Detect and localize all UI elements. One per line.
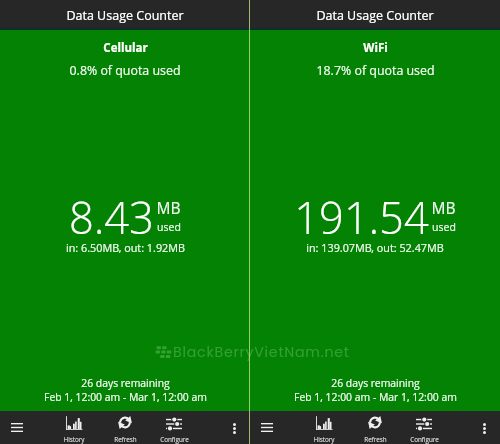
- staticText: 191.54: [294, 188, 429, 247]
- button[interactable]: Refresh: [101, 411, 149, 444]
- button[interactable]: Configure: [400, 411, 448, 444]
- button[interactable]: History: [300, 411, 348, 444]
- staticText: 26 days remaining: [81, 376, 170, 390]
- staticText: MB: [156, 197, 181, 218]
- staticText: 18.7% of quota used: [316, 62, 435, 79]
- staticText: Configure: [410, 435, 439, 444]
- button[interactable]: Menu: [250, 411, 284, 444]
- staticText: Feb 1, 12:00 am - Mar 1, 12:00 am: [44, 390, 207, 404]
- staticText: Cellular: [103, 40, 148, 56]
- staticText: 0.8% of quota used: [69, 62, 181, 79]
- staticText: WiFi: [363, 40, 388, 56]
- staticText: MB: [431, 197, 456, 218]
- staticText: 26 days remaining: [331, 376, 420, 390]
- staticText: BlackBerryVietNam.net: [173, 342, 350, 362]
- staticText: Configure: [160, 435, 189, 444]
- staticText: in: 6.50MB, out: 1.92MB: [66, 240, 185, 255]
- staticText: Data Usage Counter: [66, 7, 184, 24]
- staticText: Refresh: [114, 435, 137, 444]
- button[interactable]: Configure: [150, 411, 198, 444]
- button[interactable]: More options: [219, 411, 249, 444]
- staticText: Data Usage Counter: [316, 7, 434, 24]
- button[interactable]: History: [50, 411, 98, 444]
- staticText: used: [432, 220, 456, 234]
- staticText: used: [157, 220, 181, 234]
- staticText: in: 139.07MB, out: 52.47MB: [306, 240, 444, 255]
- button[interactable]: Refresh: [351, 411, 399, 444]
- staticText: Feb 1, 12:00 am - Mar 1, 12:00 am: [294, 390, 457, 404]
- staticText: Refresh: [364, 435, 387, 444]
- staticText: History: [313, 435, 335, 444]
- staticText: 8.43: [69, 188, 154, 247]
- staticText: History: [63, 435, 85, 444]
- button[interactable]: Menu: [0, 411, 34, 444]
- button[interactable]: More options: [469, 411, 499, 444]
